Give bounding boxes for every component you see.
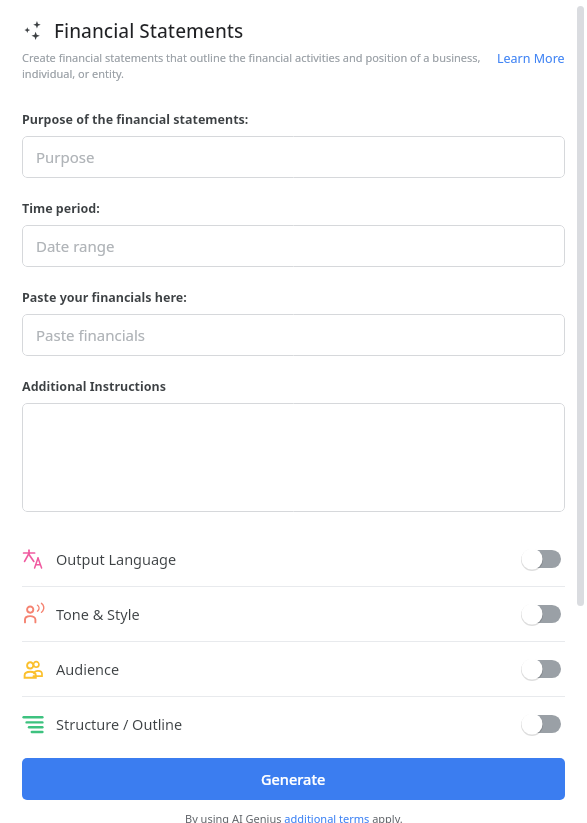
staticText: Paste your financials here:: [22, 289, 187, 306]
staticText: Paste financials: [36, 325, 145, 345]
staticText: Output Language: [56, 549, 177, 569]
button[interactable]: Output Language: [0, 532, 587, 586]
staticText: By using AI Genius additional terms appl…: [185, 811, 403, 823]
staticText: Generate: [261, 769, 326, 789]
button[interactable]: Toggle: [521, 548, 561, 570]
button[interactable]: Learn More: [497, 50, 565, 67]
button[interactable]: Tone & Style: [0, 587, 587, 641]
button[interactable]: Generate: [22, 758, 565, 800]
button[interactable]: Toggle: [521, 658, 561, 680]
button[interactable]: Date range: [22, 225, 565, 267]
staticText: Time period:: [22, 200, 100, 217]
staticText: Date range: [36, 236, 115, 256]
button[interactable]: Paste financials: [22, 314, 565, 356]
staticText: Structure / Outline: [56, 714, 183, 734]
button[interactable]: Toggle: [521, 603, 561, 625]
button[interactable]: Structure / Outline: [0, 697, 587, 751]
button[interactable]: [22, 403, 565, 512]
button[interactable]: Purpose: [22, 136, 565, 178]
staticText: Purpose of the financial statements:: [22, 111, 249, 128]
button[interactable]: Toggle: [521, 713, 561, 735]
staticText: Tone & Style: [56, 604, 140, 624]
staticText: Additional Instructions: [22, 378, 166, 395]
staticText: Purpose: [36, 147, 95, 167]
staticText: Create financial statements that outline…: [22, 50, 487, 81]
staticText: Audience: [56, 659, 120, 679]
staticText: Learn More: [497, 50, 565, 67]
button[interactable]: Audience: [0, 642, 587, 696]
staticText: Financial Statements: [54, 18, 244, 44]
